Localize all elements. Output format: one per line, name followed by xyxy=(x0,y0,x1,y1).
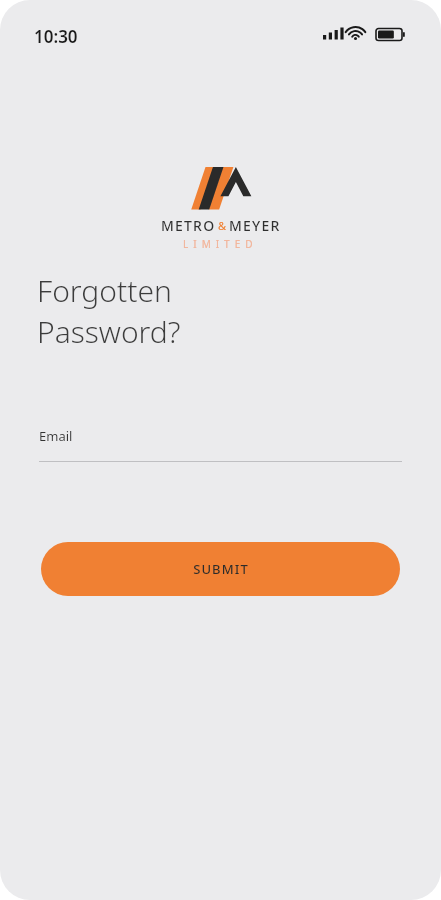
button[interactable]: SUBMIT xyxy=(41,542,400,596)
staticText: LIMITED xyxy=(183,237,258,251)
staticText: Email xyxy=(39,427,73,445)
staticText: Forgotten xyxy=(37,270,172,311)
staticText: MEYER xyxy=(229,216,281,235)
staticText: & xyxy=(218,218,227,233)
staticText: METRO xyxy=(161,216,216,235)
staticText: SUBMIT xyxy=(193,560,249,578)
staticText: 10:30 xyxy=(34,25,78,48)
button[interactable]: Email xyxy=(39,420,402,462)
staticText: Password? xyxy=(37,311,181,352)
